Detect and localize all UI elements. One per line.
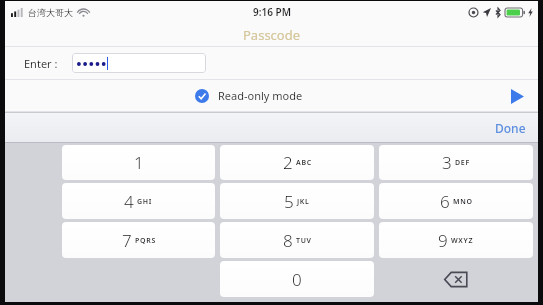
- staticText: Enter :: [24, 56, 58, 71]
- staticText: TUV: [296, 236, 312, 246]
- staticText: 0: [292, 268, 302, 291]
- staticText: 台湾大哥大: [28, 7, 73, 18]
- button[interactable]: 7: [62, 222, 215, 258]
- staticText: 3: [442, 151, 452, 174]
- staticText: WXYZ: [451, 236, 474, 246]
- staticText: MNO: [453, 197, 473, 207]
- staticText: 6: [440, 190, 450, 213]
- button[interactable]: 2: [220, 145, 374, 180]
- button[interactable]: 6: [379, 183, 533, 219]
- button[interactable]: Delete: [379, 261, 533, 297]
- staticText: 9:16 PM: [253, 5, 291, 19]
- staticText: GHI: [137, 197, 153, 207]
- staticText: PQRS: [135, 236, 156, 246]
- staticText: Passcode: [243, 26, 301, 44]
- staticText: 7: [122, 229, 132, 252]
- staticText: JKL: [297, 197, 310, 207]
- staticText: Done: [495, 120, 526, 136]
- staticText: 9: [438, 229, 448, 252]
- staticText: 4: [124, 190, 134, 213]
- button[interactable]: 3: [379, 145, 533, 180]
- button[interactable]: 4: [62, 183, 215, 219]
- button[interactable]: Run: [506, 85, 528, 107]
- staticText: ABC: [296, 158, 312, 168]
- staticText: DEF: [455, 158, 470, 168]
- staticText: 2: [283, 151, 293, 174]
- staticText: 5: [284, 190, 294, 213]
- button[interactable]: Read-only mode: [195, 88, 303, 103]
- button[interactable]: [72, 53, 206, 73]
- button[interactable]: 9: [379, 222, 533, 258]
- staticText: Read-only mode: [218, 88, 303, 103]
- button[interactable]: Done: [491, 117, 530, 139]
- button[interactable]: 0: [220, 261, 374, 297]
- button[interactable]: 5: [220, 183, 374, 219]
- button[interactable]: 8: [220, 222, 374, 258]
- staticText: 1: [134, 151, 144, 174]
- button[interactable]: 1: [62, 145, 215, 180]
- staticText: 8: [283, 229, 293, 252]
